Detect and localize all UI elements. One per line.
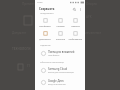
staticText: Презентация — [22, 2, 43, 6]
button[interactable]: Мои файлы — [38, 18, 52, 28]
staticText: Облачные хранилища — [40, 61, 64, 64]
staticText: ТЕХНОЛОГИ — [12, 47, 31, 51]
button[interactable]: Изображения — [68, 31, 82, 41]
staticText: Мои файлы — [48, 54, 60, 57]
staticText: Мои файлы — [39, 25, 51, 28]
button[interactable]: Загрузки — [53, 31, 67, 41]
button[interactable]: Документы — [38, 31, 52, 41]
staticText: APK — [86, 15, 92, 19]
staticText: изменение — [85, 31, 102, 35]
staticText: Документ — [12, 31, 27, 35]
button[interactable]: Галерея — [53, 18, 67, 28]
button[interactable]: Папка для вложений — [35, 48, 85, 58]
staticText: 12:45 — [37, 1, 43, 4]
staticText: Предложено — [40, 12, 54, 15]
staticText: Сохранить — [39, 7, 55, 11]
staticText: Галерея — [56, 25, 65, 28]
button[interactable]: Google Диск — [35, 77, 85, 87]
button[interactable]: Search — [71, 6, 77, 12]
staticText: Недавние — [40, 44, 51, 47]
staticText: Samsung Cloud — [48, 67, 68, 71]
staticText: Вход не выполнен — [48, 83, 66, 86]
staticText: Войти для синхронизации — [48, 71, 74, 74]
staticText: Папка для вложений — [48, 50, 75, 54]
staticText: Изображения — [68, 38, 82, 41]
staticText: Google Диск — [48, 79, 64, 83]
button[interactable]: More options — [77, 6, 83, 12]
staticText: Заметки — [71, 25, 80, 28]
button[interactable]: Заметки — [68, 18, 82, 28]
button[interactable]: Samsung Cloud — [35, 65, 85, 75]
staticText: Загрузки — [56, 38, 65, 41]
staticText: Документы — [39, 38, 51, 41]
